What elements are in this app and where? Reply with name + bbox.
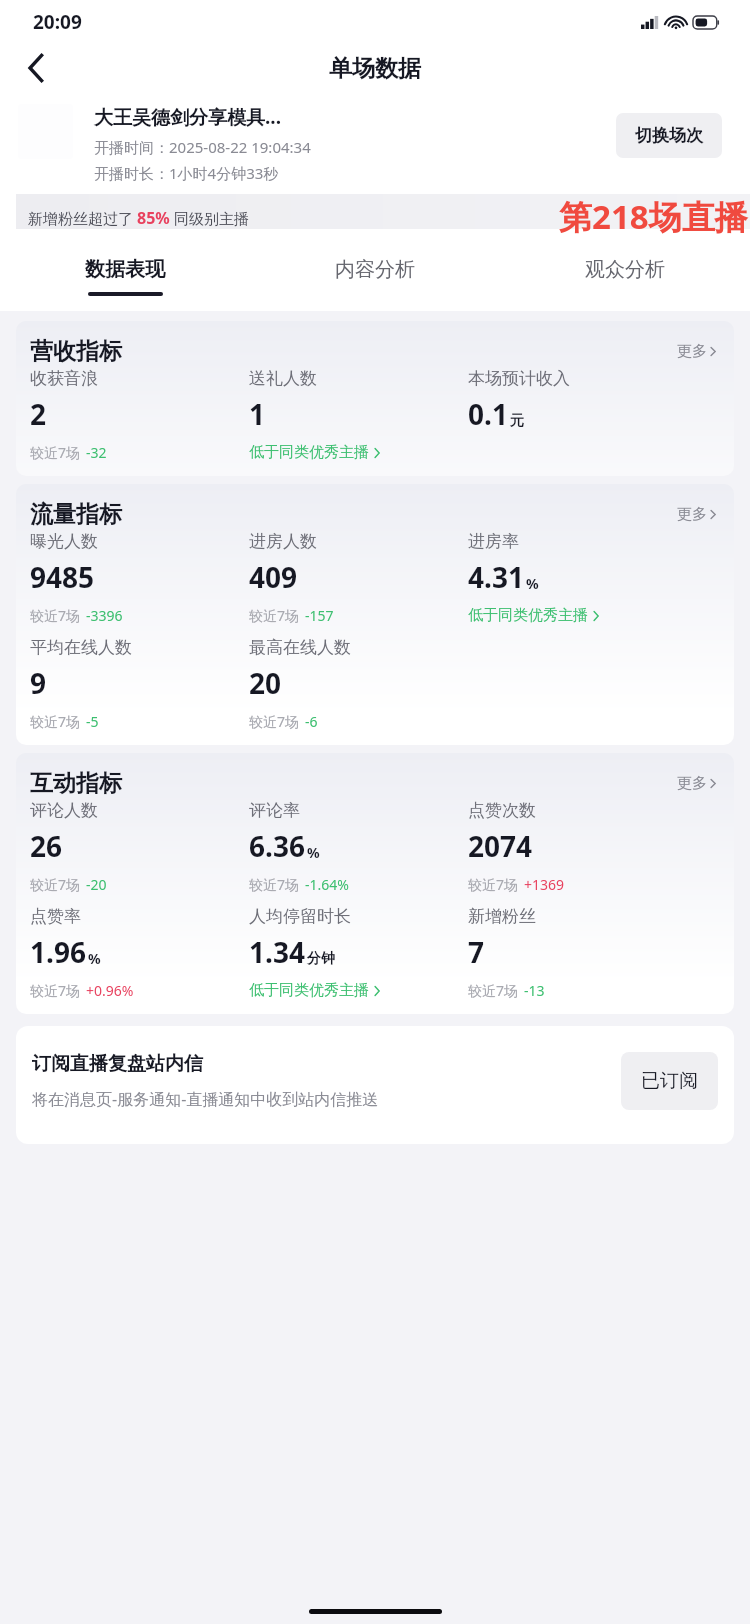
staticText: -5 <box>86 712 99 731</box>
staticText: 曝光人数 <box>30 531 98 552</box>
staticText: +1369 <box>524 875 565 894</box>
staticText: 数据表现 <box>85 257 165 282</box>
staticText: 送礼人数 <box>249 368 317 389</box>
staticText: 人均停留时长 <box>249 906 351 927</box>
staticText: -6 <box>305 712 318 731</box>
staticText: 20:09 <box>33 9 82 35</box>
button[interactable]: 已订阅 <box>621 1052 718 1110</box>
staticText: 进房率 <box>468 531 519 552</box>
staticText: 订阅直播复盘站内信 <box>32 1052 203 1076</box>
staticText: 更多 <box>677 774 707 793</box>
staticText: 切换场次 <box>635 125 703 146</box>
staticText: 流量指标 <box>30 500 122 529</box>
staticText: 单场数据 <box>329 54 421 83</box>
staticText: % <box>307 843 320 862</box>
staticText: 进房人数 <box>249 531 317 552</box>
staticText: % <box>526 574 539 593</box>
staticText: 同级别主播 <box>170 208 249 228</box>
staticText: 观众分析 <box>585 257 665 282</box>
staticText: 元 <box>510 412 524 430</box>
staticText: 7 <box>468 933 485 971</box>
staticText: +0.96% <box>86 981 134 1000</box>
button[interactable]: 数据表现 <box>0 253 250 300</box>
staticText: 点赞次数 <box>468 800 536 821</box>
staticText: 1.96 <box>30 933 86 971</box>
staticText: 开播时间：2025-08-22 19:04:34 <box>94 137 311 157</box>
staticText: -1.64% <box>305 875 349 894</box>
staticText: 较近7场 <box>30 981 81 1000</box>
staticText: 2 <box>30 395 47 433</box>
staticText: 平均在线人数 <box>30 637 132 658</box>
staticText: 营收指标 <box>30 337 122 366</box>
staticText: 本场预计收入 <box>468 368 570 389</box>
staticText: 开播时长：1小时4分钟33秒 <box>94 163 279 183</box>
button[interactable]: 内容分析 <box>250 253 500 296</box>
staticText: 4.31 <box>468 558 524 596</box>
staticText: 最高在线人数 <box>249 637 351 658</box>
button[interactable]: 更多 <box>673 770 720 797</box>
staticText: % <box>88 949 101 968</box>
staticText: 较近7场 <box>30 443 81 462</box>
staticText: 1 <box>249 395 266 433</box>
staticText: -3396 <box>86 606 123 625</box>
staticText: 6.36 <box>249 827 305 865</box>
staticText: 20 <box>249 664 282 702</box>
staticText: 较近7场 <box>249 875 300 894</box>
staticText: 2074 <box>468 827 533 865</box>
button[interactable]: Back <box>12 44 60 92</box>
staticText: 较近7场 <box>249 712 300 731</box>
staticText: 将在消息页-服务通知-直播通知中收到站内信推送 <box>32 1088 379 1110</box>
staticText: 低于同类优秀主播 <box>249 981 369 1000</box>
staticText: 评论率 <box>249 800 300 821</box>
button[interactable]: 观众分析 <box>500 253 750 296</box>
button[interactable]: 切换场次 <box>616 113 722 158</box>
staticText: 内容分析 <box>335 257 415 282</box>
staticText: -13 <box>524 981 545 1000</box>
staticText: 新增粉丝超过了 <box>28 208 137 228</box>
staticText: 更多 <box>677 342 707 361</box>
button[interactable]: 更多 <box>673 501 720 528</box>
staticText: 较近7场 <box>468 875 519 894</box>
staticText: 9485 <box>30 558 95 596</box>
staticText: 评论人数 <box>30 800 98 821</box>
staticText: 较近7场 <box>249 606 300 625</box>
button[interactable]: 低于同类优秀主播 <box>468 606 720 625</box>
staticText: 低于同类优秀主播 <box>468 606 588 625</box>
staticText: 新增粉丝 <box>468 906 536 927</box>
staticText: 已订阅 <box>641 1069 698 1093</box>
staticText: 较近7场 <box>468 981 519 1000</box>
button[interactable]: 低于同类优秀主播 <box>249 981 468 1000</box>
staticText: -157 <box>305 606 334 625</box>
staticText: 互动指标 <box>30 769 122 798</box>
staticText: 0.1 <box>468 395 508 433</box>
staticText: 大王吴德剑分享模具... <box>94 104 282 130</box>
staticText: 409 <box>249 558 298 596</box>
staticText: 分钟 <box>307 950 335 968</box>
staticText: 点赞率 <box>30 906 81 927</box>
staticText: 更多 <box>677 505 707 524</box>
staticText: 85% <box>137 207 170 229</box>
staticText: 收获音浪 <box>30 368 98 389</box>
staticText: 9 <box>30 664 47 702</box>
staticText: 较近7场 <box>30 606 81 625</box>
button[interactable]: 更多 <box>673 338 720 365</box>
staticText: 较近7场 <box>30 712 81 731</box>
button[interactable]: 低于同类优秀主播 <box>249 443 720 462</box>
staticText: -32 <box>86 443 107 462</box>
staticText: 第218场直播 <box>559 194 748 239</box>
staticText: 1.34 <box>249 933 305 971</box>
staticText: 较近7场 <box>30 875 81 894</box>
staticText: -20 <box>86 875 107 894</box>
staticText: 26 <box>30 827 63 865</box>
staticText: 低于同类优秀主播 <box>249 443 369 462</box>
